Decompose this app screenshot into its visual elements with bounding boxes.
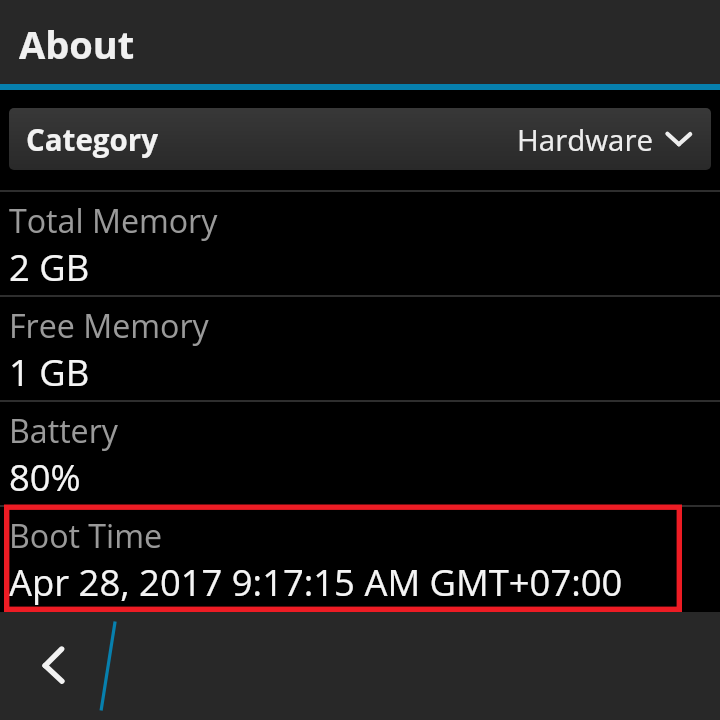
staticText: Apr 28, 2017 9:17:15 AM GMT+07:00 bbox=[9, 557, 623, 607]
staticText: 1 GB bbox=[9, 347, 90, 397]
staticText: Category bbox=[26, 119, 158, 159]
staticText: 2 GB bbox=[9, 242, 90, 292]
staticText: Boot Time bbox=[9, 514, 163, 558]
button[interactable]: Total Memory bbox=[0, 190, 720, 295]
staticText: About bbox=[19, 18, 135, 70]
button[interactable]: Free Memory bbox=[0, 295, 720, 400]
staticText: Battery bbox=[9, 409, 118, 453]
staticText: 80% bbox=[9, 452, 81, 502]
staticText: Free Memory bbox=[9, 304, 209, 348]
button[interactable]: Battery bbox=[0, 400, 720, 505]
button[interactable]: Category bbox=[9, 108, 711, 170]
staticText: Hardware bbox=[517, 119, 654, 159]
staticText: Total Memory bbox=[9, 199, 218, 243]
button[interactable]: Boot Time bbox=[0, 505, 720, 610]
button[interactable]: Back bbox=[26, 623, 82, 679]
